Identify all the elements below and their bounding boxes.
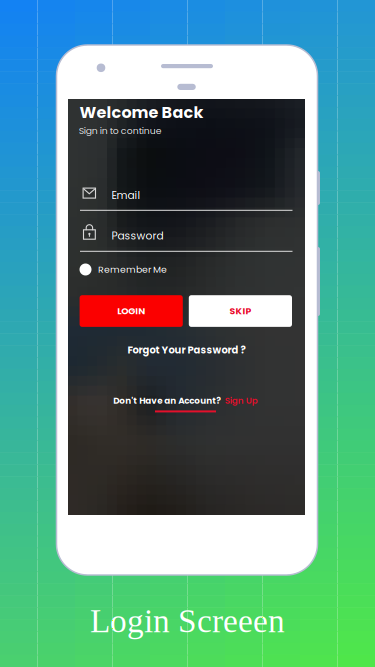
staticText: Sign Up bbox=[225, 395, 258, 407]
staticText: Email bbox=[111, 188, 140, 203]
button[interactable]: LOGIN bbox=[80, 295, 183, 327]
staticText: Login Screeen bbox=[90, 602, 285, 639]
staticText: Welcome Back bbox=[79, 101, 203, 124]
staticText: LOGIN bbox=[117, 304, 145, 318]
button[interactable]: Password bbox=[80, 223, 293, 257]
button[interactable]: Email bbox=[80, 182, 293, 216]
staticText: Password bbox=[111, 228, 163, 243]
staticText: Forgot Your Password ? bbox=[127, 343, 245, 357]
staticText: Don't Have an Account? bbox=[113, 395, 221, 407]
staticText: SKIP bbox=[229, 304, 251, 318]
button[interactable]: Don't Have an Account? bbox=[105, 391, 265, 415]
button[interactable]: Forgot Your Password ? bbox=[116, 342, 256, 358]
button[interactable]: SKIP bbox=[189, 295, 292, 327]
staticText: Remember Me bbox=[98, 263, 167, 276]
staticText: Sign in to continue bbox=[79, 124, 162, 137]
button[interactable]: Remember Me bbox=[79, 261, 179, 277]
